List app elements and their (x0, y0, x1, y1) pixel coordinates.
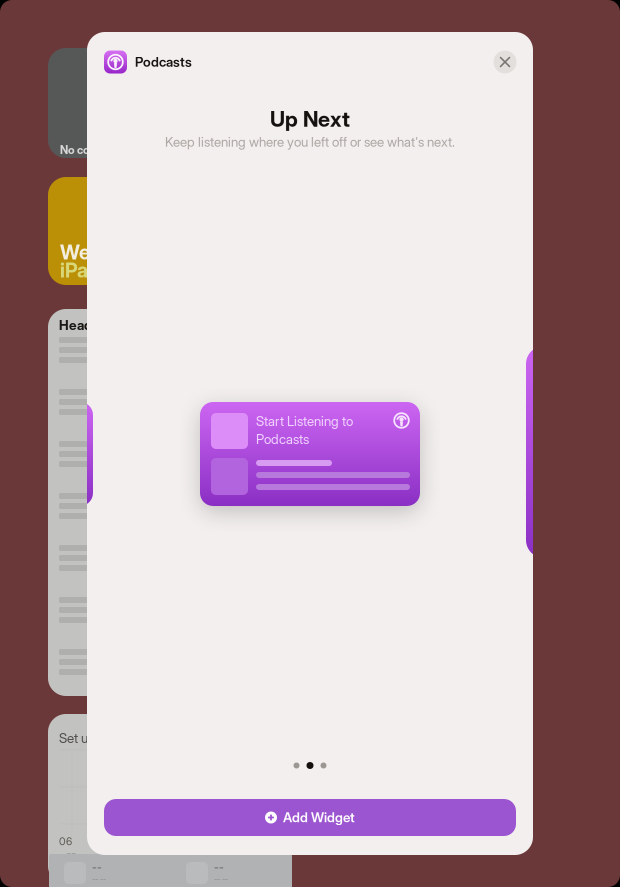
staticText: Head (59, 317, 92, 333)
staticText: iPad (60, 258, 100, 282)
staticText: -- (214, 861, 224, 874)
staticText: 06 (59, 835, 72, 848)
staticText: Podcasts (135, 54, 192, 70)
button[interactable]: Add Widget (87, 799, 533, 855)
button[interactable]: Close (489, 46, 521, 78)
staticText: -- -- (214, 874, 228, 884)
staticText: Wel (60, 240, 95, 264)
staticText: Podcasts (256, 431, 309, 447)
staticText: Up Next (270, 106, 350, 132)
staticText: -- -- (92, 874, 106, 884)
staticText: -- (66, 846, 76, 860)
staticText: Start Listening to (256, 413, 353, 429)
staticText: No co (60, 143, 90, 157)
staticText: -- (92, 861, 102, 874)
staticText: Add Widget (283, 809, 355, 825)
staticText: Keep listening where you left off or see… (165, 134, 455, 150)
staticText: Set up (59, 730, 96, 746)
